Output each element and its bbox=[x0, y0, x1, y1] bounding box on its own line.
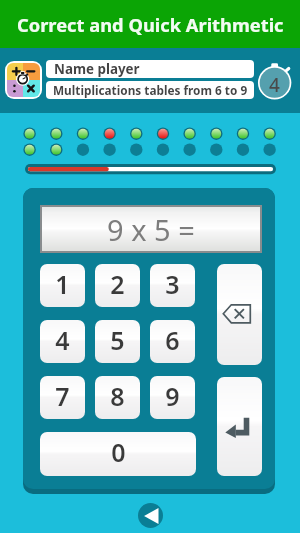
button[interactable]: 4 bbox=[40, 320, 85, 363]
staticText: 8 bbox=[110, 379, 125, 413]
staticText: 0 bbox=[111, 435, 126, 469]
button[interactable]: App icon bbox=[5, 61, 42, 99]
staticText: 9 x 5 = bbox=[107, 210, 195, 249]
staticText: 6 bbox=[165, 323, 180, 357]
button[interactable]: Timer bbox=[257, 64, 293, 100]
staticText: 4 bbox=[269, 72, 280, 98]
staticText: Name player bbox=[54, 60, 140, 78]
button[interactable]: Name player bbox=[46, 60, 254, 78]
staticText: 4 bbox=[55, 323, 70, 357]
staticText: Correct and Quick Arithmetic bbox=[17, 12, 284, 37]
staticText: 7 bbox=[55, 379, 70, 413]
button[interactable]: 3 bbox=[150, 264, 195, 307]
staticText: 1 bbox=[55, 267, 70, 301]
button[interactable]: 7 bbox=[40, 376, 85, 419]
button[interactable]: 1 bbox=[40, 264, 85, 307]
staticText: 3 bbox=[165, 267, 180, 301]
button[interactable]: Enter bbox=[217, 377, 262, 476]
staticText: 9 bbox=[165, 379, 180, 413]
button[interactable]: 9 x 5 = bbox=[42, 207, 260, 251]
staticText: 2 bbox=[110, 267, 125, 301]
button[interactable]: 2 bbox=[95, 264, 140, 307]
button[interactable]: 6 bbox=[150, 320, 195, 363]
button[interactable]: Multiplications tables from 6 to 9 bbox=[46, 81, 254, 99]
button[interactable]: Back bbox=[138, 503, 163, 528]
staticText: 5 bbox=[110, 323, 125, 357]
button[interactable]: Backspace bbox=[217, 264, 262, 365]
button[interactable]: 0 bbox=[40, 432, 196, 476]
staticText: Multiplications tables from 6 to 9 bbox=[53, 82, 248, 98]
button[interactable]: 8 bbox=[95, 376, 140, 419]
button[interactable]: 5 bbox=[95, 320, 140, 363]
button[interactable]: 9 bbox=[150, 376, 195, 419]
